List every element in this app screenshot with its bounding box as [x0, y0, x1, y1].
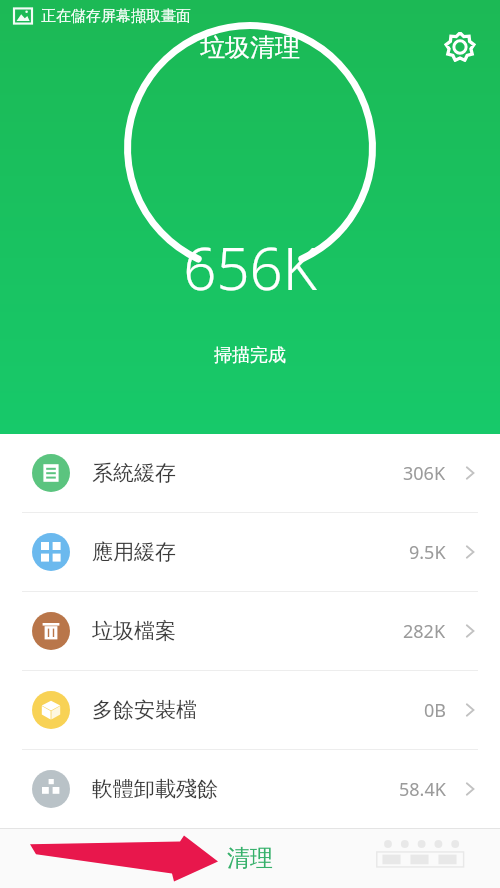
staticText: 58.4K — [399, 777, 446, 802]
button[interactable]: 垃圾檔案 — [0, 592, 500, 670]
staticText: 306K — [403, 461, 446, 486]
staticText: 應用緩存 — [92, 539, 176, 565]
staticText: 656K — [183, 228, 317, 307]
button[interactable]: 多餘安裝檔 — [0, 671, 500, 749]
staticText: 垃圾清理 — [200, 32, 300, 62]
staticText: 正在儲存屏幕擷取畫面 — [41, 7, 191, 26]
staticText: 垃圾檔案 — [92, 618, 176, 644]
staticText: 0B — [424, 698, 446, 723]
staticText: 掃描完成 — [214, 344, 286, 367]
button[interactable]: 清理 — [0, 829, 500, 888]
staticText: 多餘安裝檔 — [92, 697, 197, 723]
button[interactable]: 應用緩存 — [0, 513, 500, 591]
button[interactable]: 軟體卸載殘餘 — [0, 750, 500, 828]
staticText: 系統緩存 — [92, 460, 176, 486]
button[interactable]: Settings — [440, 32, 480, 62]
staticText: 9.5K — [409, 540, 446, 565]
staticText: 清理 — [227, 844, 273, 873]
button[interactable]: 系統緩存 — [0, 434, 500, 512]
staticText: 282K — [403, 619, 446, 644]
staticText: 軟體卸載殘餘 — [92, 776, 218, 802]
